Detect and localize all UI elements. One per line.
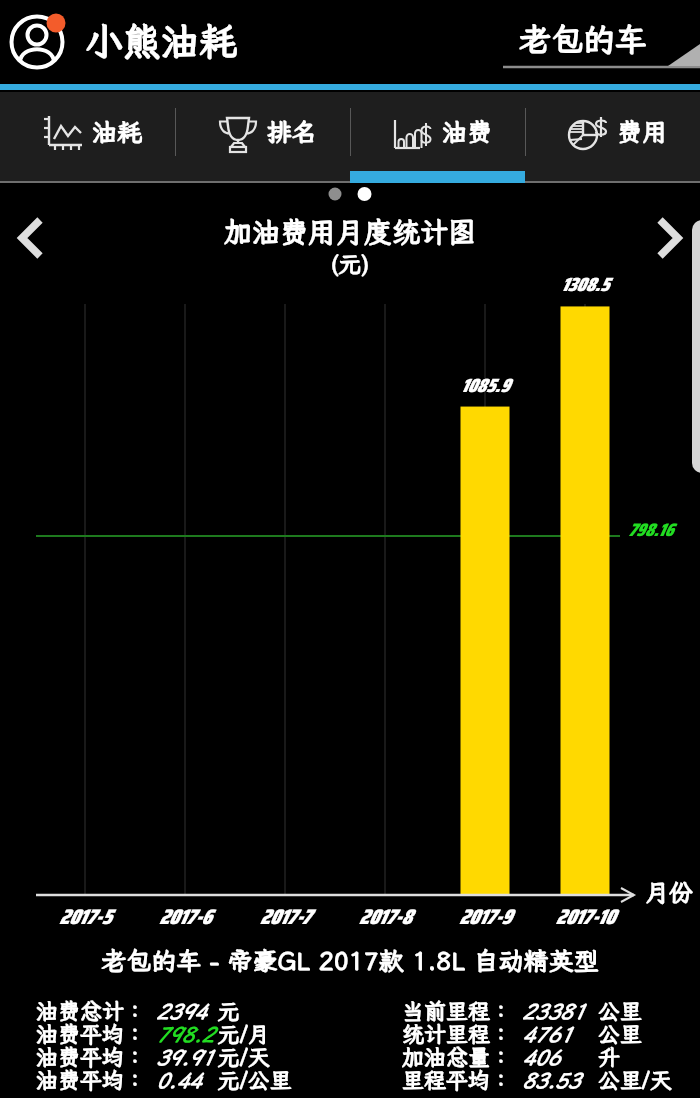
staticText: 2017-7 — [225, 900, 345, 933]
staticText: 0.44 — [156, 1066, 202, 1094]
staticText: 加油费用月度统计图 — [0, 213, 700, 250]
staticText: 里程平均： — [402, 1065, 513, 1094]
staticText: 元/天 — [218, 1042, 270, 1071]
staticText: 排名 — [267, 115, 318, 148]
staticText: 23381 — [522, 997, 585, 1025]
staticText: 油费平均： — [36, 1019, 147, 1048]
staticText: 2017-10 — [525, 900, 645, 933]
staticText: 元/月 — [218, 1019, 270, 1048]
staticText: 费用 — [617, 115, 668, 148]
staticText: 升 — [598, 1042, 621, 1071]
staticText: 798.2 — [156, 1020, 214, 1048]
staticText: 小熊油耗 — [85, 16, 238, 66]
staticText: 油费 — [442, 115, 493, 148]
staticText: 元 — [218, 996, 241, 1025]
staticText: 当前里程： — [402, 996, 513, 1025]
staticText: 2017-6 — [125, 900, 245, 933]
staticText: 2017-5 — [25, 900, 145, 933]
button[interactable]: 排名 — [176, 92, 350, 171]
staticText: 油费平均： — [36, 1042, 147, 1071]
staticText: 4761 — [522, 1020, 573, 1048]
staticText: 油耗 — [92, 115, 143, 148]
staticText: 798.16 — [628, 516, 673, 544]
button[interactable]: Previous month — [8, 206, 60, 258]
staticText: 406 — [522, 1043, 560, 1071]
button[interactable]: Profile — [5, 10, 75, 80]
staticText: 公里/天 — [598, 1065, 672, 1094]
staticText: 公里 — [598, 996, 643, 1025]
staticText: 老包的车 - 帝豪GL 2017款 1.8L 自动精英型 — [0, 944, 700, 977]
button[interactable]: 费用 — [526, 92, 700, 171]
staticText: 月份 — [645, 876, 693, 908]
staticText: 1308.5 — [515, 269, 655, 299]
staticText: 油费平均： — [36, 1065, 147, 1094]
staticText: (元) — [0, 248, 700, 278]
staticText: 公里 — [598, 1019, 643, 1048]
button[interactable]: Next month — [646, 206, 698, 258]
staticText: 油费总计： — [36, 996, 147, 1025]
staticText: 1085.9 — [415, 370, 555, 400]
button[interactable]: 油耗 — [0, 92, 175, 171]
button[interactable]: 老包的车 — [500, 4, 700, 78]
staticText: 统计里程： — [402, 1019, 513, 1048]
staticText: 2394 — [156, 997, 207, 1025]
staticText: 39.91 — [156, 1043, 214, 1071]
button[interactable]: 油费 — [351, 92, 525, 171]
staticText: 加油总量： — [402, 1042, 513, 1071]
staticText: 2017-9 — [425, 900, 545, 933]
staticText: 元/公里 — [218, 1065, 292, 1094]
staticText: 2017-8 — [325, 900, 445, 933]
staticText: 83.53 — [522, 1066, 580, 1094]
staticText: 老包的车 — [519, 18, 648, 60]
